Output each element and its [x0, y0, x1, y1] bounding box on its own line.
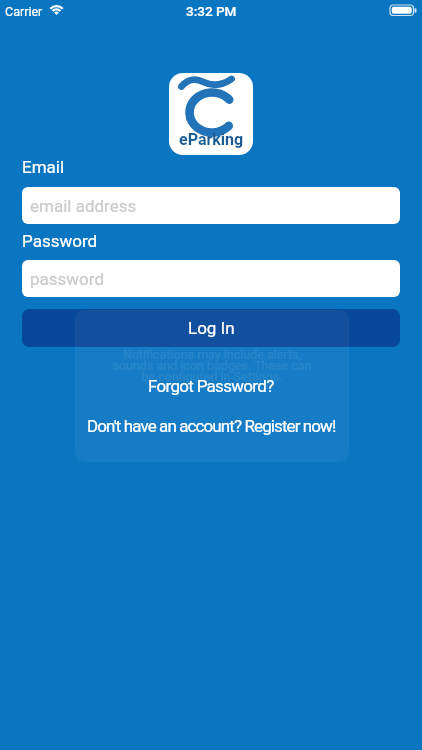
staticText: 3:32 PM: [186, 3, 237, 19]
staticText: Carrier: [5, 4, 43, 19]
staticText: Email: [22, 157, 65, 177]
staticText: Forgot Password?: [148, 376, 274, 396]
button[interactable]: password: [22, 260, 400, 297]
staticText: Log In: [188, 318, 235, 338]
staticText: eParking: [179, 130, 244, 149]
button[interactable]: Forgot Password?: [0, 376, 422, 396]
button[interactable]: email address: [22, 187, 400, 224]
button[interactable]: Don't have an account? Register now!: [0, 416, 422, 436]
staticText: Notifications may include alerts, sounds…: [112, 347, 312, 384]
staticText: email address: [30, 196, 137, 216]
button[interactable]: Log In: [22, 309, 400, 347]
staticText: Don't have an account? Register now!: [87, 416, 336, 436]
staticText: password: [30, 269, 105, 289]
staticText: Password: [22, 231, 98, 251]
